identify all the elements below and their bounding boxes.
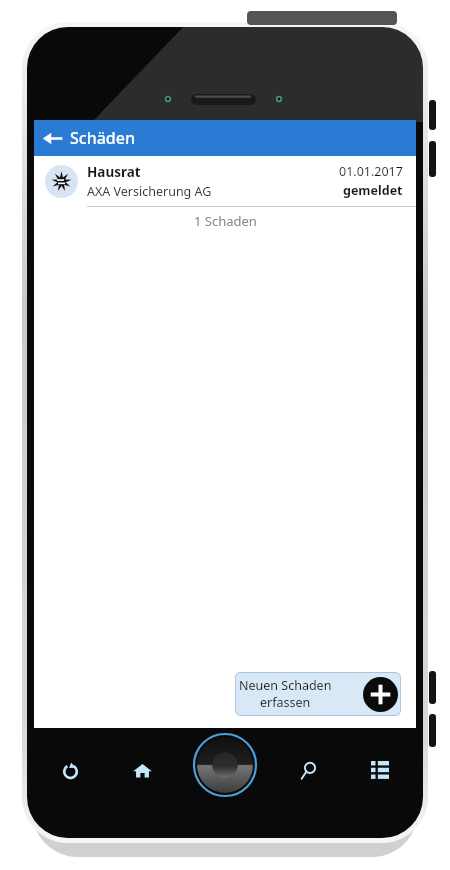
button[interactable]: Home button	[193, 733, 257, 797]
button[interactable]: Search	[272, 729, 344, 811]
staticText: Hausrat	[87, 163, 141, 181]
button[interactable]: Back	[34, 729, 106, 811]
staticText: erfassen	[260, 694, 311, 711]
staticText: 01.01.2017	[339, 163, 403, 180]
staticText: AXA Versicherung AG	[87, 183, 212, 200]
staticText: Neuen Schaden	[239, 677, 332, 694]
button[interactable]: Neuen Schaden erfassen	[363, 677, 398, 712]
button[interactable]: Back	[34, 120, 70, 156]
staticText: 1 Schaden	[194, 212, 257, 230]
button[interactable]: Menu	[344, 729, 416, 811]
button[interactable]: Neuen Schaden	[235, 672, 401, 716]
button[interactable]: Hausrat	[34, 156, 416, 207]
button[interactable]: Home	[106, 729, 178, 811]
staticText: Schäden	[70, 127, 135, 149]
staticText: gemeldet	[343, 182, 403, 199]
